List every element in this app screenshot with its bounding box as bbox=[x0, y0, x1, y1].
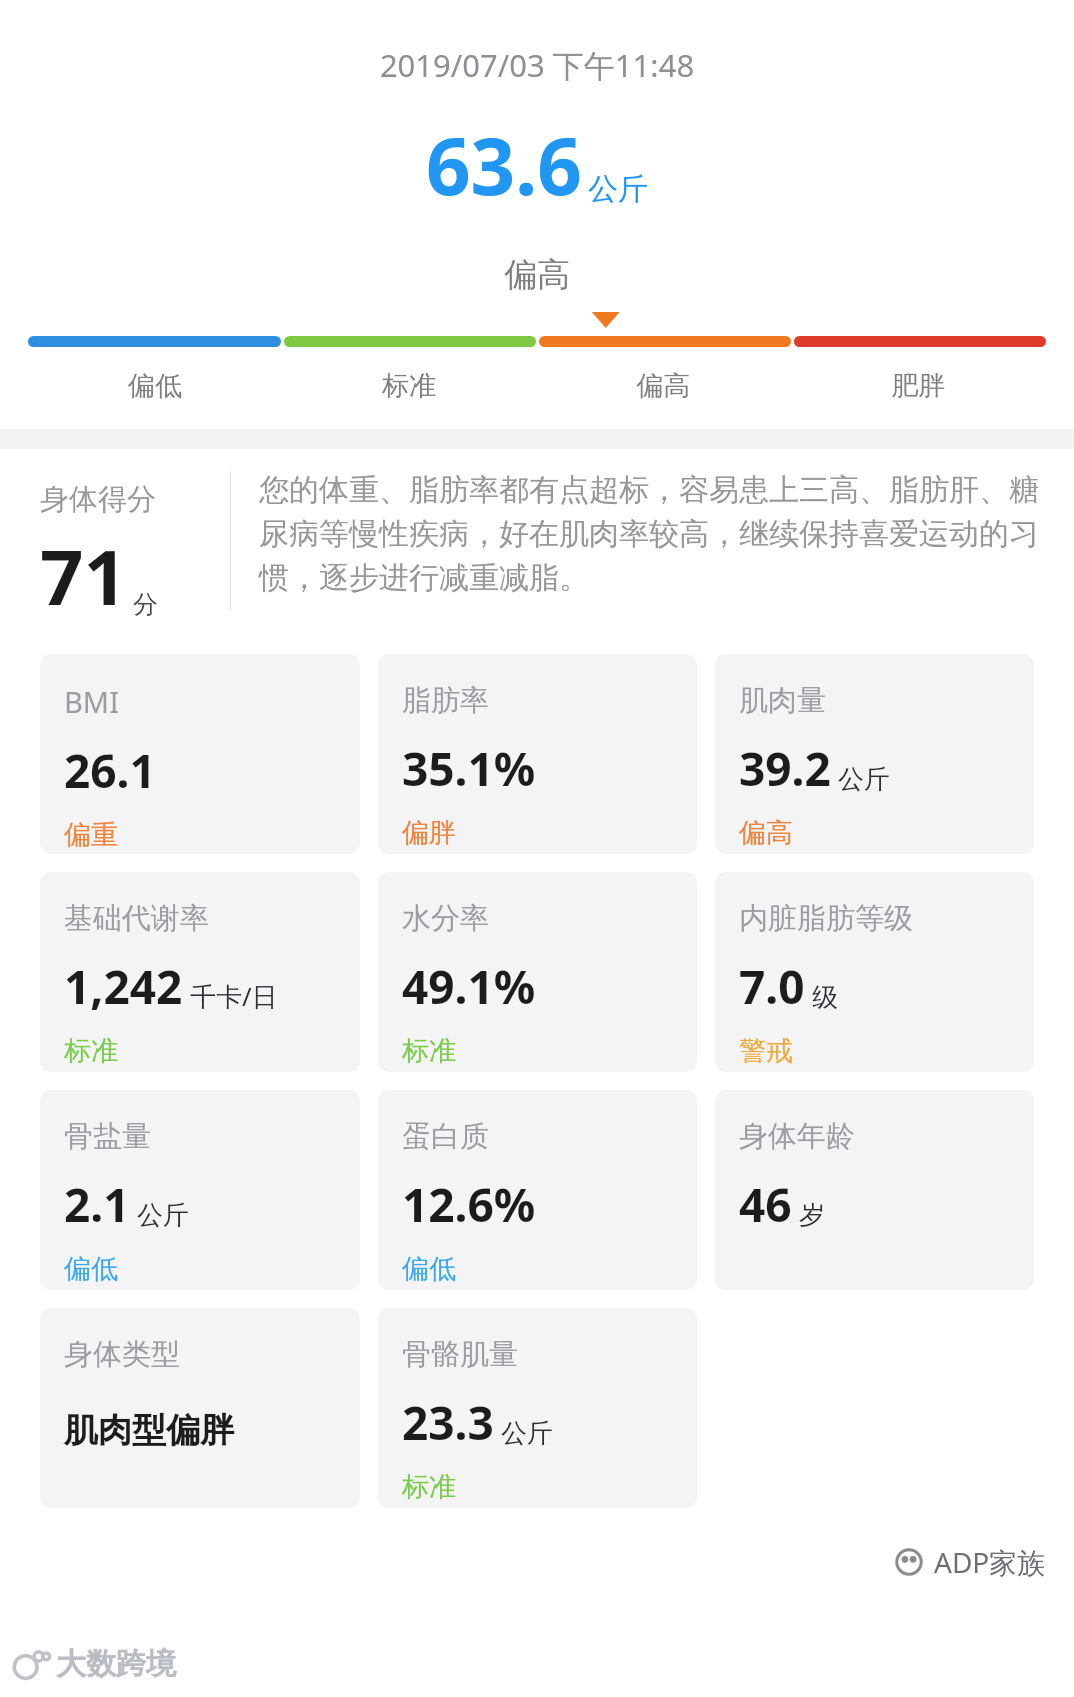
staticText: 身体类型 bbox=[64, 1336, 180, 1373]
staticText: 7.0 bbox=[739, 955, 805, 1018]
staticText: 身体得分 bbox=[40, 481, 156, 518]
button[interactable]: 蛋白质 bbox=[378, 1090, 697, 1290]
staticText: 1,242 bbox=[64, 955, 183, 1018]
staticText: 水分率 bbox=[402, 900, 489, 937]
staticText: 偏低 bbox=[28, 369, 282, 403]
staticText: 2.1 bbox=[64, 1173, 130, 1236]
staticText: 公斤 bbox=[501, 1417, 553, 1450]
staticText: 千卡/日 bbox=[190, 978, 278, 1014]
staticText: BMI bbox=[64, 682, 119, 721]
button[interactable]: 脂肪率 bbox=[378, 654, 697, 854]
staticText: 岁 bbox=[799, 1199, 825, 1232]
staticText: 基础代谢率 bbox=[64, 900, 209, 937]
button[interactable]: 身体类型 bbox=[40, 1308, 360, 1508]
staticText: 26.1 bbox=[64, 739, 156, 802]
staticText: 肥胖 bbox=[791, 369, 1046, 403]
staticText: 偏高 bbox=[0, 254, 1074, 296]
staticText: 标准 bbox=[402, 1034, 456, 1068]
staticText: 肌肉型偏胖 bbox=[64, 1409, 234, 1452]
staticText: 2019/07/03 下午11:48 bbox=[0, 44, 1074, 86]
staticText: ADP家族 bbox=[934, 1543, 1046, 1581]
staticText: 标准 bbox=[282, 369, 536, 403]
staticText: 分 bbox=[133, 589, 158, 620]
staticText: 偏低 bbox=[64, 1252, 118, 1286]
staticText: 骨盐量 bbox=[64, 1118, 151, 1155]
staticText: 公斤 bbox=[137, 1199, 189, 1232]
staticText: 肌肉量 bbox=[739, 682, 826, 719]
staticText: 级 bbox=[812, 981, 838, 1014]
staticText: 23.3 bbox=[402, 1391, 494, 1454]
staticText: 12.6% bbox=[402, 1173, 536, 1236]
staticText: 骨骼肌量 bbox=[402, 1336, 518, 1373]
button[interactable]: 身体年龄 bbox=[715, 1090, 1034, 1290]
button[interactable]: 内脏脂肪等级 bbox=[715, 872, 1034, 1072]
staticText: 公斤 bbox=[588, 170, 648, 208]
staticText: 您的体重、脂肪率都有点超标，容易患上三高、脂肪肝、糖尿病等慢性疾病，好在肌肉率较… bbox=[259, 471, 1048, 597]
button[interactable]: 基础代谢率 bbox=[40, 872, 360, 1072]
staticText: 偏重 bbox=[64, 818, 118, 852]
staticText: 内脏脂肪等级 bbox=[739, 900, 913, 937]
staticText: 身体年龄 bbox=[739, 1118, 855, 1155]
staticText: 警戒 bbox=[739, 1034, 793, 1068]
button[interactable]: 水分率 bbox=[378, 872, 697, 1072]
staticText: 39.2 bbox=[739, 737, 831, 800]
staticText: 46 bbox=[739, 1173, 792, 1236]
staticText: 公斤 bbox=[838, 763, 890, 796]
button[interactable]: 骨骼肌量 bbox=[378, 1308, 697, 1508]
staticText: 偏低 bbox=[402, 1252, 456, 1286]
button[interactable]: BMI bbox=[40, 654, 360, 854]
button[interactable]: 骨盐量 bbox=[40, 1090, 360, 1290]
staticText: 标准 bbox=[64, 1034, 118, 1068]
staticText: 偏胖 bbox=[402, 816, 456, 850]
staticText: 蛋白质 bbox=[402, 1118, 489, 1155]
staticText: 大数跨境 bbox=[56, 1645, 176, 1683]
button[interactable]: 肌肉量 bbox=[715, 654, 1034, 854]
staticText: 脂肪率 bbox=[402, 682, 489, 719]
staticText: 偏高 bbox=[739, 816, 793, 850]
staticText: 71 bbox=[40, 524, 127, 628]
staticText: 35.1% bbox=[402, 737, 536, 800]
staticText: 偏高 bbox=[536, 369, 791, 403]
staticText: 49.1% bbox=[402, 955, 536, 1018]
staticText: 63.6 bbox=[426, 112, 582, 218]
staticText: 标准 bbox=[402, 1470, 456, 1504]
